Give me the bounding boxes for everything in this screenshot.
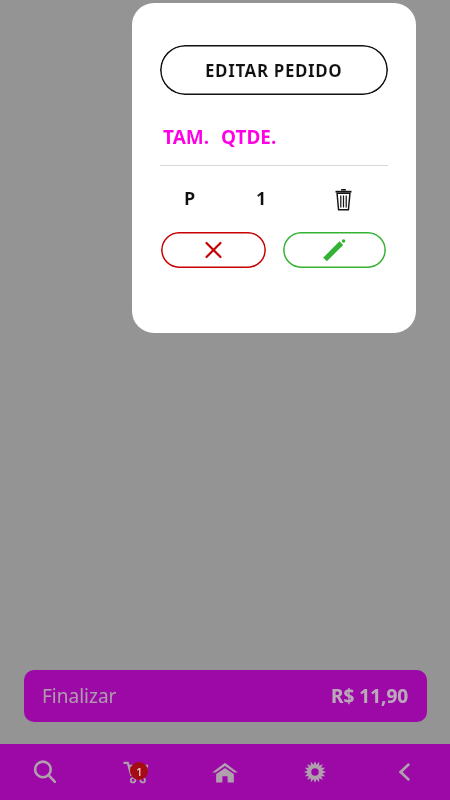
staticText: TAM.: [163, 124, 210, 150]
button[interactable]: Início: [180, 744, 270, 800]
button[interactable]: Voltar: [360, 744, 450, 800]
button[interactable]: Cancelar: [161, 232, 266, 268]
staticText: 1: [136, 764, 143, 779]
button[interactable]: Finalizar: [24, 670, 427, 722]
button[interactable]: Configurações: [270, 744, 360, 800]
button[interactable]: Buscar: [0, 744, 90, 800]
button[interactable]: EDITAR PEDIDO: [160, 45, 388, 95]
staticText: R$ 11,90: [331, 683, 409, 709]
staticText: Finalizar: [42, 683, 117, 709]
button[interactable]: Excluir item: [328, 184, 358, 214]
button[interactable]: Carrinho: [90, 744, 180, 800]
staticText: 1: [256, 186, 267, 211]
staticText: P: [184, 186, 196, 211]
staticText: QTDE.: [221, 124, 277, 150]
button[interactable]: Editar: [283, 232, 386, 268]
staticText: BABY DOLL: [118, 22, 204, 44]
staticText: Ruffa: [118, 50, 158, 72]
staticText: EDITAR PEDIDO: [205, 59, 343, 82]
